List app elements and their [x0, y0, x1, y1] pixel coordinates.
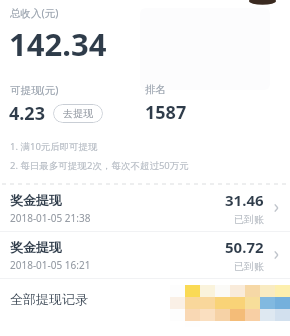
staticText: 可提现(元): [10, 83, 59, 97]
button[interactable]: 全部提现记录: [0, 279, 290, 319]
staticText: 50.72: [225, 237, 264, 257]
other: 查看详情: [270, 248, 284, 262]
button[interactable]: 奖金提现: [0, 185, 290, 231]
staticText: 2018-01-05 16:21: [10, 258, 91, 272]
staticText: 去提现: [63, 107, 93, 120]
other: 查看详情: [270, 201, 284, 215]
staticText: 总收入(元): [10, 6, 59, 20]
staticText: 已到账: [234, 213, 264, 226]
button[interactable]: 去提现: [53, 104, 103, 123]
staticText: 全部提现记录: [10, 291, 88, 307]
staticText: 奖金提现: [10, 192, 62, 208]
staticText: 已到账: [234, 260, 264, 273]
staticText: 4.23: [9, 101, 45, 126]
button[interactable]: 奖金提现: [0, 232, 290, 278]
staticText: 142.34: [9, 23, 107, 65]
staticText: 1. 满10元后即可提现: [10, 140, 98, 153]
staticText: 2. 每日最多可提现2次，每次不超过50万元: [10, 159, 189, 172]
staticText: 1587: [145, 100, 187, 125]
staticText: 排名: [145, 83, 166, 96]
staticText: 31.46: [225, 190, 264, 210]
staticText: 2018-01-05 21:38: [10, 211, 91, 225]
staticText: 奖金提现: [10, 239, 62, 255]
